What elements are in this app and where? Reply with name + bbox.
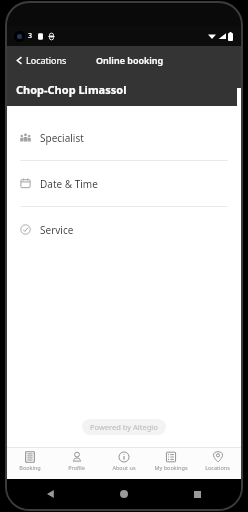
button[interactable]: About us: [100, 448, 147, 479]
staticText: Chop-Chop Limassol: [16, 82, 127, 97]
staticText: 3: [28, 31, 33, 41]
staticText: Powered by Altegio: [90, 422, 158, 432]
button[interactable]: Service: [7, 207, 241, 252]
staticText: Locations: [26, 54, 67, 66]
button[interactable]: Date & Time: [7, 161, 241, 206]
staticText: Profile: [68, 464, 85, 471]
button[interactable]: My bookings: [147, 448, 194, 479]
button[interactable]: Locations: [12, 50, 70, 70]
button[interactable]: Back: [43, 486, 59, 502]
staticText: Date & Time: [40, 177, 98, 191]
button[interactable]: Recent apps: [189, 486, 205, 502]
button[interactable]: Specialist: [7, 115, 241, 160]
button[interactable]: Powered by Altegio: [82, 419, 166, 435]
staticText: Booking: [19, 464, 41, 471]
staticText: Locations: [205, 464, 230, 471]
button[interactable]: Locations: [194, 448, 241, 479]
button[interactable]: Booking: [7, 448, 53, 479]
staticText: Specialist: [40, 131, 84, 145]
staticText: My bookings: [154, 464, 188, 471]
button[interactable]: Home: [116, 486, 132, 502]
staticText: Service: [40, 223, 74, 237]
staticText: Online booking: [96, 54, 164, 66]
button[interactable]: Profile: [53, 448, 100, 479]
staticText: About us: [112, 464, 136, 471]
